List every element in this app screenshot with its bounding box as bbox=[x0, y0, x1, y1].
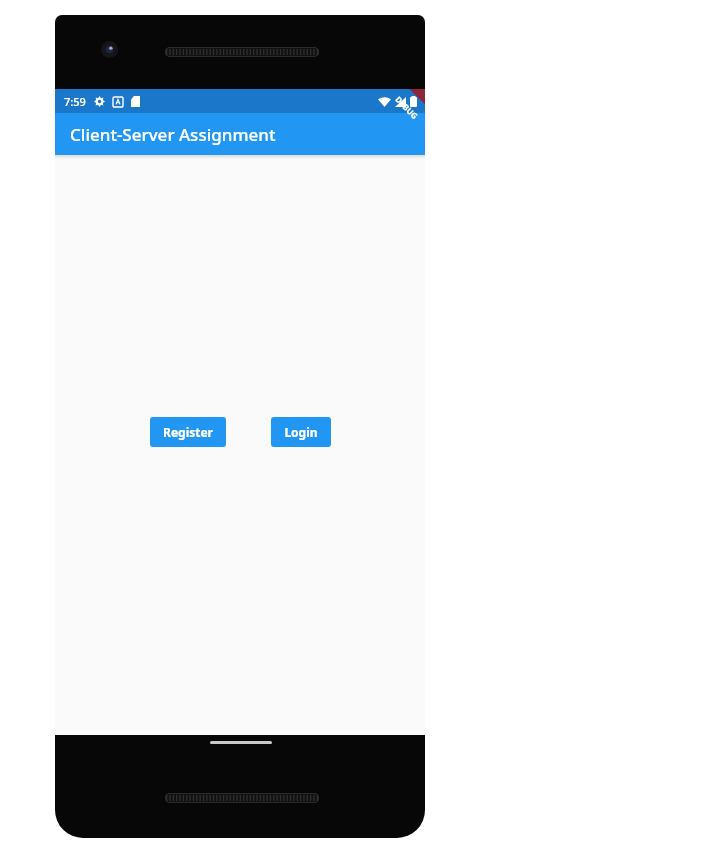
staticText: DEBUG bbox=[393, 94, 421, 121]
button[interactable]: Login bbox=[271, 417, 331, 447]
staticText: Register bbox=[163, 424, 213, 440]
staticText: 7:59 bbox=[64, 94, 86, 109]
staticText: Client-Server Assignment bbox=[70, 123, 276, 146]
staticText: Login bbox=[284, 424, 318, 440]
button[interactable]: Register bbox=[150, 417, 226, 447]
